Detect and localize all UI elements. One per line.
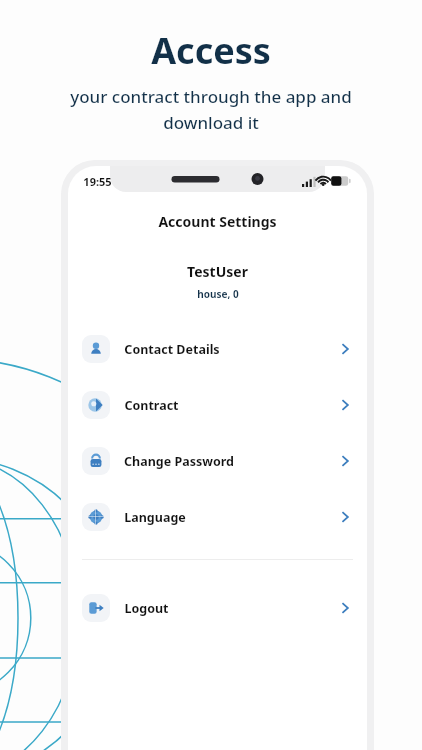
staticText: Contract bbox=[124, 397, 179, 414]
staticText: Logout bbox=[124, 600, 169, 617]
staticText: Change Password bbox=[124, 453, 234, 470]
staticText: Language bbox=[124, 509, 186, 526]
staticText: Contact Details bbox=[124, 341, 220, 358]
button[interactable]: Logout bbox=[68, 580, 367, 636]
staticText: TestUser bbox=[187, 262, 248, 281]
staticText: your contract through the app and downlo… bbox=[36, 85, 386, 134]
staticText: house, 0 bbox=[197, 287, 239, 301]
button[interactable]: Contract bbox=[68, 377, 367, 433]
staticText: Account Settings bbox=[158, 212, 277, 231]
button[interactable]: Language bbox=[68, 489, 367, 545]
staticText: 19:55 bbox=[83, 174, 112, 189]
staticText: Access bbox=[151, 26, 271, 75]
button[interactable]: Change Password bbox=[68, 433, 367, 489]
button[interactable]: Contact Details bbox=[68, 321, 367, 377]
